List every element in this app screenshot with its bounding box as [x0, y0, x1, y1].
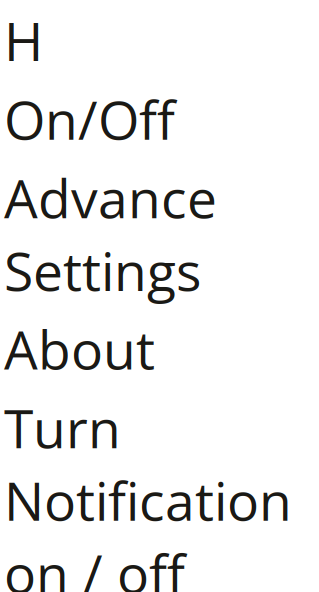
staticText: About: [4, 312, 155, 385]
staticText: On/Off: [4, 83, 175, 155]
staticText: Advance Settings: [4, 161, 217, 307]
staticText: H: [4, 4, 43, 77]
staticText: Turn Notification on / off: [4, 391, 292, 592]
